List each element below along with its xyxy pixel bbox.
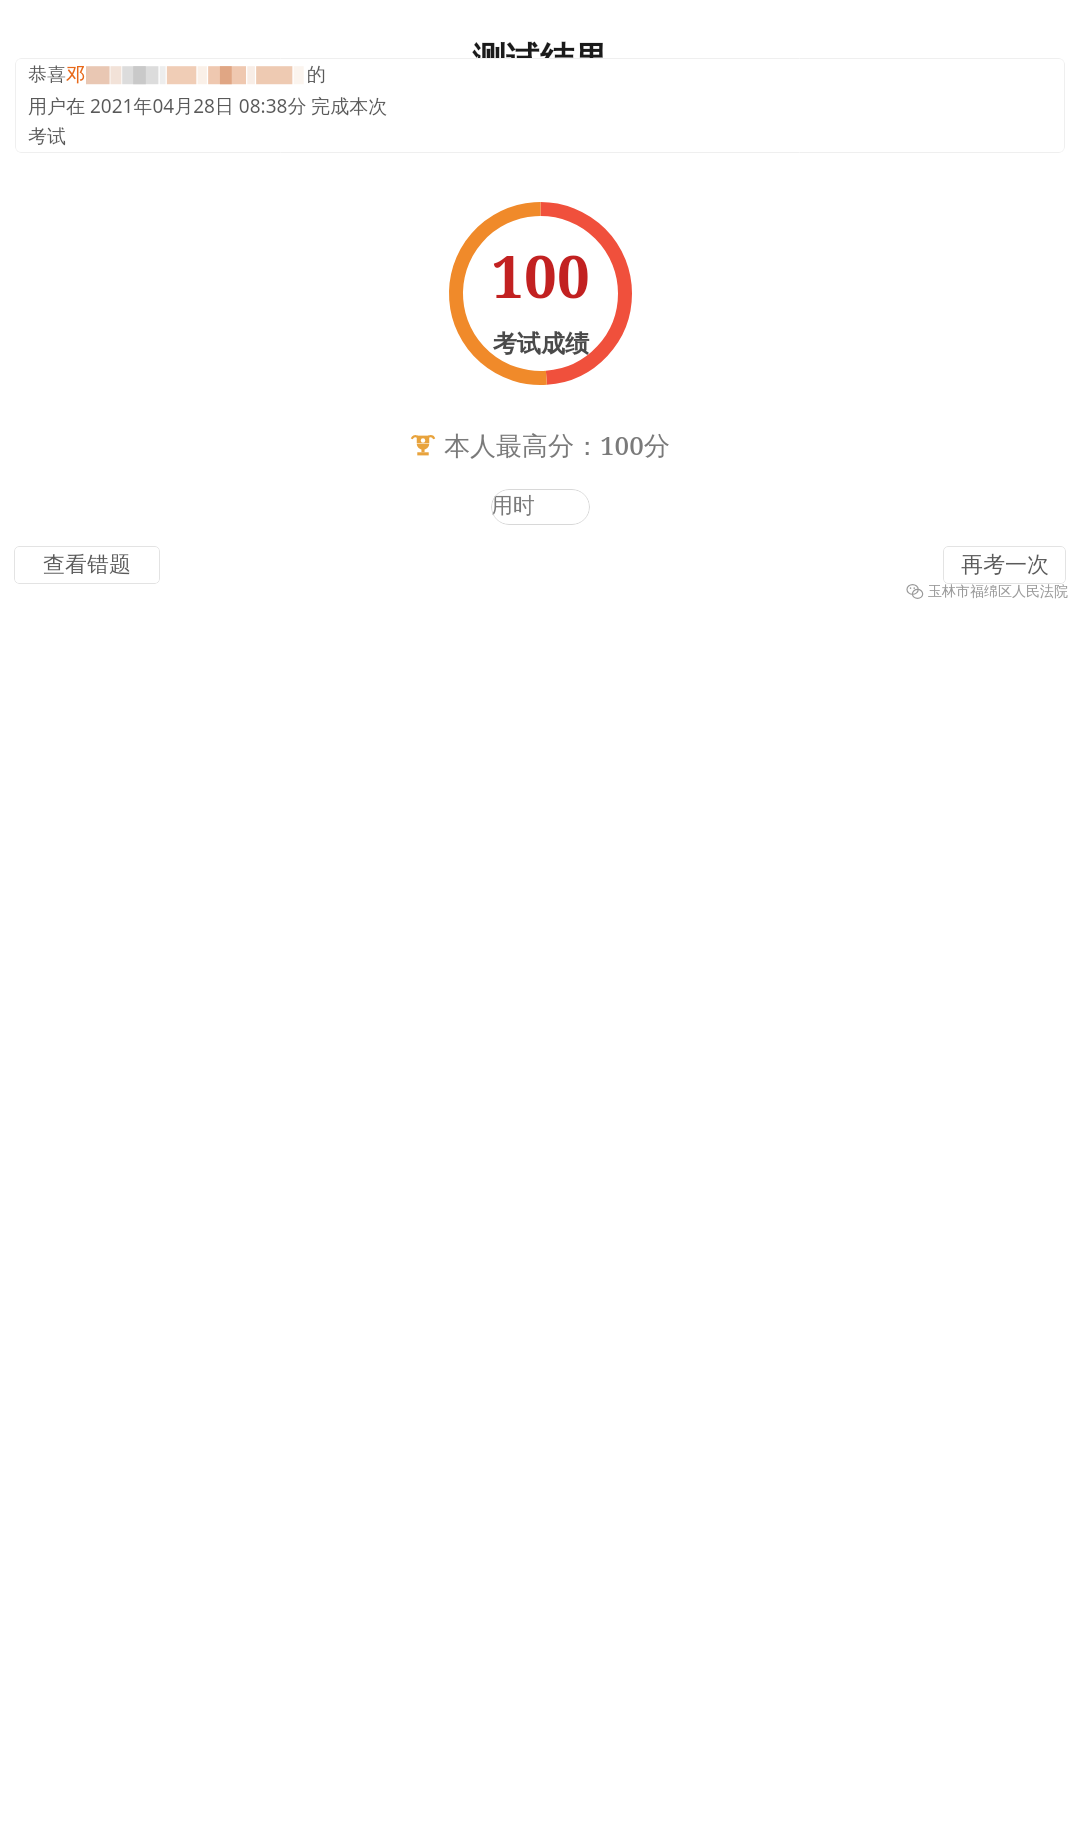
- button[interactable]: 恭喜: [15, 58, 1065, 153]
- staticText: 本人最高分：100分: [444, 427, 670, 463]
- staticText: 用时 01:10: [491, 489, 590, 525]
- staticText: 测试结果: [0, 38, 1080, 81]
- staticText: 玉林市福绵区人民法院: [928, 583, 1068, 601]
- button[interactable]: 查看错题: [14, 546, 160, 584]
- staticText: 的: [307, 63, 326, 87]
- staticText: 考试成绩: [493, 329, 589, 359]
- staticText: 用户在 2021年04月28日 08:38分 完成本次: [28, 93, 388, 119]
- staticText: 考试: [28, 125, 66, 149]
- button[interactable]: 再考一次: [943, 546, 1066, 584]
- staticText: 邓: [66, 63, 85, 87]
- staticText: 再考一次: [961, 551, 1049, 579]
- staticText: 100: [491, 236, 590, 315]
- button[interactable]: 用时 01:10: [491, 489, 590, 525]
- staticText: 恭喜: [28, 63, 66, 87]
- staticText: 查看错题: [43, 551, 131, 579]
